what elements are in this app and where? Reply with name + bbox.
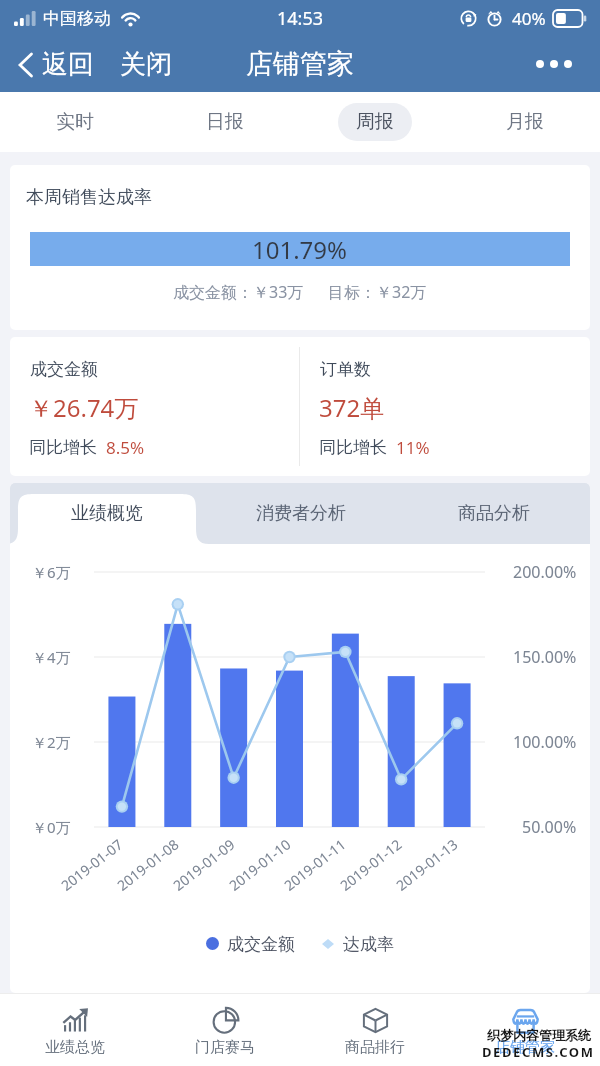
button[interactable]: 门店赛马 — [150, 993, 300, 1066]
staticText: 月报 — [506, 110, 544, 134]
staticText: 2019-01-13 — [392, 834, 462, 895]
button[interactable]: 成交金额 — [10, 337, 299, 476]
staticText: 店铺管家 — [495, 1038, 555, 1057]
button[interactable]: 日报 — [150, 92, 300, 152]
staticText: 成交金额 — [30, 359, 98, 380]
staticText: ￥26.74万 — [29, 391, 139, 424]
button[interactable]: More options — [530, 50, 578, 78]
staticText: 商品排行 — [345, 1038, 405, 1057]
staticText: ￥6万 — [32, 562, 71, 582]
staticText: 2019-01-12 — [336, 834, 406, 895]
staticText: 本周销售达成率 — [26, 186, 152, 209]
button[interactable]: 店铺管家 — [450, 993, 600, 1066]
staticText: 50.00% — [522, 816, 577, 838]
button[interactable]: 订单数 — [300, 337, 590, 476]
staticText: 2019-01-10 — [225, 834, 295, 895]
staticText: ￥0万 — [32, 817, 71, 837]
staticText: 订单数 — [320, 359, 371, 380]
staticText: 成交金额 — [227, 934, 295, 955]
staticText: ￥4万 — [32, 647, 71, 667]
staticText: 14:53 — [277, 6, 324, 31]
button[interactable]: 商品分析 — [397, 483, 590, 544]
staticText: 11% — [396, 436, 430, 459]
staticText: 8.5% — [106, 436, 145, 459]
staticText: 周报 — [356, 110, 394, 134]
staticText: 店铺管家 — [246, 47, 354, 81]
staticText: 日报 — [206, 110, 244, 134]
staticText: 2019-01-09 — [169, 834, 239, 895]
staticText: ￥2万 — [32, 732, 71, 752]
staticText: 100.00% — [513, 731, 577, 753]
staticText: 织梦内容管理系统 — [487, 1027, 591, 1043]
button[interactable]: 业绩总览 — [0, 993, 150, 1066]
staticText: 成交金额：￥33万 — [173, 281, 304, 303]
staticText: 同比增长 — [29, 437, 97, 458]
staticText: 2019-01-07 — [57, 834, 127, 895]
staticText: 2019-01-08 — [113, 834, 183, 895]
staticText: 200.00% — [513, 561, 577, 583]
button[interactable]: 返回 — [12, 40, 100, 89]
button[interactable]: 实时 — [0, 92, 150, 152]
staticText: DEDECMS.COM — [482, 1043, 595, 1061]
staticText: 同比增长 — [319, 437, 387, 458]
staticText: 消费者分析 — [256, 502, 346, 525]
button[interactable]: 商品排行 — [300, 993, 450, 1066]
staticText: 业绩概览 — [71, 502, 143, 525]
button[interactable]: 关闭 — [114, 40, 178, 89]
button[interactable]: 消费者分析 — [204, 483, 397, 544]
staticText: 2019-01-11 — [280, 834, 350, 895]
button[interactable]: 周报 — [300, 92, 450, 152]
staticText: 中国移动 — [43, 8, 111, 29]
staticText: 返回 — [42, 48, 94, 81]
button[interactable]: 月报 — [450, 92, 600, 152]
staticText: 业绩总览 — [45, 1038, 105, 1057]
staticText: 372单 — [319, 391, 385, 424]
staticText: 40% — [512, 7, 546, 30]
staticText: 101.79% — [252, 233, 348, 266]
button[interactable]: 业绩概览 — [10, 483, 204, 544]
staticText: 达成率 — [343, 934, 394, 955]
staticText: 目标：￥32万 — [328, 281, 427, 303]
staticText: 门店赛马 — [195, 1038, 255, 1057]
staticText: 实时 — [56, 110, 94, 134]
staticText: 商品分析 — [458, 502, 530, 525]
staticText: 150.00% — [513, 646, 577, 668]
